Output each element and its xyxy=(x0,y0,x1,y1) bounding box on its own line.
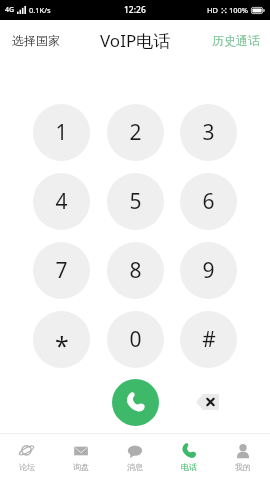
staticText: 7 xyxy=(55,256,68,285)
staticText: 论坛 xyxy=(19,462,35,472)
staticText: 0.1K/s xyxy=(29,5,51,15)
staticText: 历史通话 xyxy=(212,33,260,48)
staticText: 100% xyxy=(229,5,249,15)
button[interactable]: 消息 xyxy=(108,439,162,476)
button[interactable]: 8 xyxy=(107,242,164,299)
button[interactable]: 9 xyxy=(180,242,237,299)
button[interactable]: Call xyxy=(112,379,159,426)
staticText: 询盘 xyxy=(73,462,89,472)
staticText: 0 xyxy=(129,325,142,354)
staticText: 2 xyxy=(129,118,142,147)
button[interactable]: Delete xyxy=(190,385,224,419)
staticText: * xyxy=(55,328,69,362)
button[interactable]: 6 xyxy=(180,173,237,230)
button[interactable]: 选择国家 xyxy=(0,26,72,55)
button[interactable]: 4 xyxy=(33,173,90,230)
staticText: 选择国家 xyxy=(12,33,60,48)
staticText: 6 xyxy=(202,187,215,216)
button[interactable]: 3 xyxy=(180,104,237,161)
button[interactable]: 论坛 xyxy=(0,439,54,476)
button[interactable]: 电话 xyxy=(162,439,216,476)
button[interactable]: 2 xyxy=(107,104,164,161)
staticText: VoIP电话 xyxy=(100,29,171,52)
staticText: 消息 xyxy=(127,462,143,472)
staticText: 我的 xyxy=(235,462,251,472)
staticText: 12:26 xyxy=(124,4,146,16)
button[interactable]: 历史通话 xyxy=(202,26,270,55)
button[interactable]: 我的 xyxy=(216,439,270,476)
button[interactable]: 0 xyxy=(107,311,164,368)
staticText: # xyxy=(202,325,216,354)
staticText: 8 xyxy=(129,256,142,285)
staticText: 1 xyxy=(55,118,68,147)
button[interactable]: # xyxy=(180,311,237,368)
staticText: 3 xyxy=(202,118,215,147)
staticText: 4G xyxy=(5,5,15,15)
button[interactable]: 5 xyxy=(107,173,164,230)
staticText: 9 xyxy=(202,256,215,285)
button[interactable]: 询盘 xyxy=(54,439,108,476)
button[interactable]: 7 xyxy=(33,242,90,299)
button[interactable]: 1 xyxy=(33,104,90,161)
staticText: HD xyxy=(207,5,219,15)
button[interactable]: * xyxy=(33,311,90,368)
staticText: 4 xyxy=(55,187,68,216)
staticText: 电话 xyxy=(181,462,197,472)
staticText: 5 xyxy=(129,187,142,216)
